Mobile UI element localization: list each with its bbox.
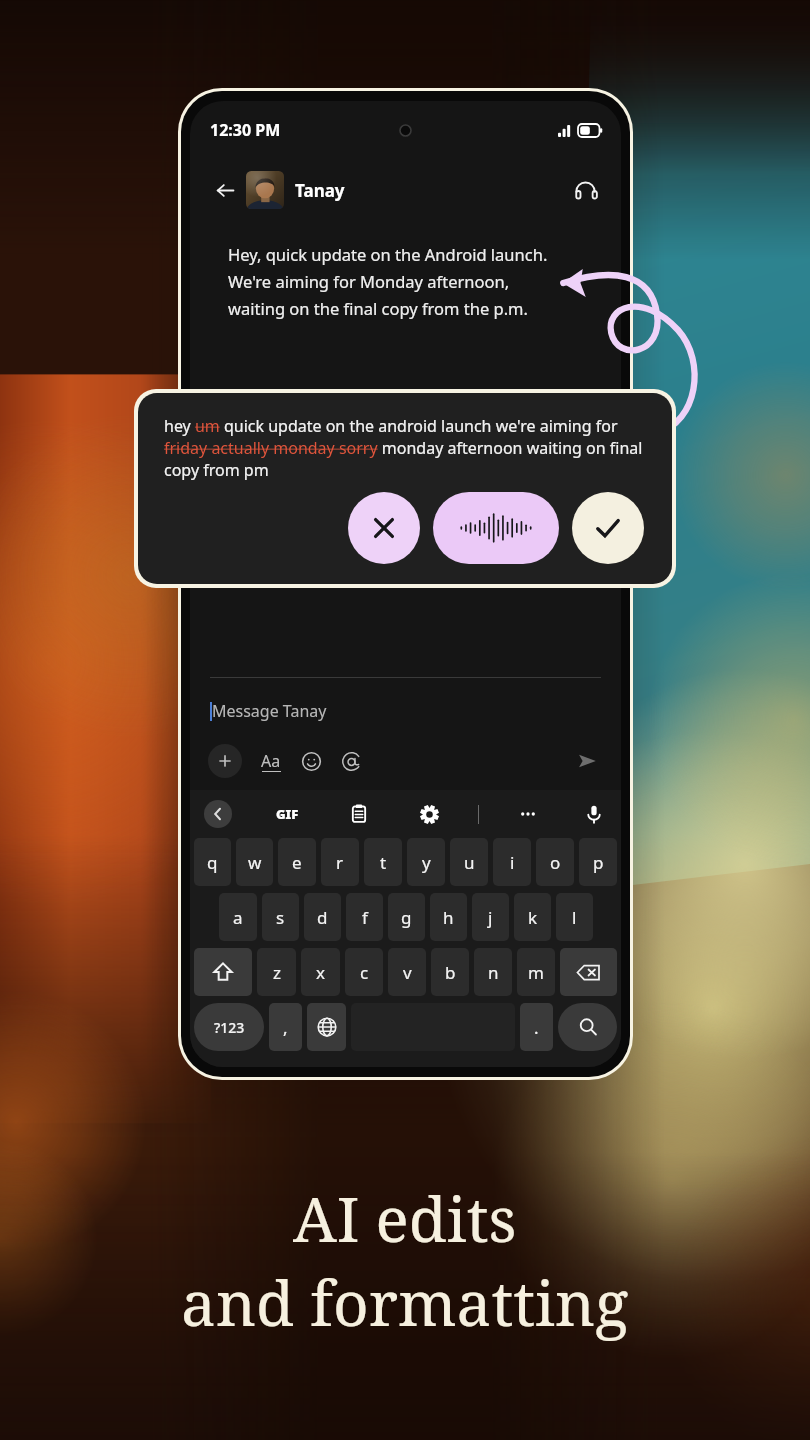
staticText: s — [276, 906, 285, 929]
staticText: r — [336, 851, 344, 874]
staticText: e — [292, 851, 302, 874]
button[interactable]: h — [430, 893, 467, 941]
staticText: Message Tanay — [212, 700, 327, 722]
button[interactable]: k — [514, 893, 551, 941]
button[interactable]: y — [407, 838, 445, 886]
button[interactable]: e — [278, 838, 316, 886]
button[interactable]: Voice input — [581, 801, 607, 827]
button[interactable]: v — [388, 948, 426, 996]
staticText: Aa — [261, 750, 281, 772]
button[interactable]: m — [517, 948, 555, 996]
staticText: u — [464, 851, 475, 874]
staticText: waiting on the final copy from the p.m. — [228, 297, 528, 319]
button[interactable]: Clipboard — [346, 801, 372, 827]
staticText: c — [360, 961, 369, 984]
button[interactable]: Send — [571, 745, 603, 777]
staticText: w — [248, 851, 262, 874]
staticText: 12:30 PM — [210, 119, 281, 141]
button[interactable]: Add attachment — [208, 744, 242, 778]
staticText: o — [550, 851, 561, 874]
button[interactable]: ?123 — [194, 1003, 264, 1051]
button[interactable]: c — [345, 948, 383, 996]
staticText: l — [572, 906, 577, 929]
button[interactable]: x — [301, 948, 340, 996]
button[interactable]: q — [194, 838, 231, 886]
staticText: . — [534, 1016, 539, 1039]
button[interactable]: Huddle — [567, 172, 603, 208]
button[interactable]: i — [493, 838, 531, 886]
button[interactable]: Expand toolbar — [204, 800, 232, 828]
button[interactable]: Tanay — [246, 171, 345, 209]
button[interactable]: p — [579, 838, 617, 886]
staticText: k — [528, 906, 538, 929]
staticText: and formatting — [181, 1260, 629, 1344]
button[interactable]: d — [304, 893, 341, 941]
button[interactable]: n — [474, 948, 512, 996]
staticText: GIF — [276, 805, 299, 823]
staticText: t — [380, 851, 387, 874]
button[interactable]: Search — [558, 1003, 617, 1051]
staticText: hey um quick update on the android launc… — [164, 415, 650, 481]
button[interactable]: Recording — [433, 492, 559, 564]
button[interactable]: GIF — [272, 799, 302, 829]
button[interactable]: l — [556, 893, 593, 941]
staticText: h — [443, 906, 454, 929]
button[interactable]: , — [269, 1003, 302, 1051]
button[interactable]: More options — [515, 801, 541, 827]
staticText: d — [317, 906, 328, 929]
staticText: n — [488, 961, 499, 984]
button[interactable]: f — [346, 893, 383, 941]
staticText: Tanay — [295, 179, 345, 202]
button[interactable]: t — [364, 838, 402, 886]
staticText: x — [316, 961, 325, 984]
button[interactable]: Change language — [307, 1003, 346, 1051]
button[interactable]: g — [388, 893, 425, 941]
button[interactable]: Mention — [336, 746, 366, 776]
button[interactable]: Formatting — [256, 746, 286, 776]
staticText: p — [593, 851, 604, 874]
button[interactable]: j — [472, 893, 509, 941]
staticText: g — [401, 906, 412, 929]
button[interactable]: r — [321, 838, 359, 886]
staticText: , — [283, 1016, 288, 1039]
button[interactable]: Shift — [194, 948, 252, 996]
staticText: m — [528, 961, 544, 984]
button[interactable]: s — [262, 893, 299, 941]
button[interactable]: b — [431, 948, 469, 996]
button[interactable]: Discard — [348, 492, 420, 564]
staticText: z — [273, 961, 281, 984]
staticText: q — [207, 851, 218, 874]
staticText: ?123 — [214, 1018, 245, 1037]
button[interactable]: a — [219, 893, 257, 941]
button[interactable]: Back — [208, 173, 242, 207]
staticText: f — [362, 906, 368, 929]
button[interactable]: Emoji — [296, 746, 326, 776]
button[interactable]: Accept — [572, 492, 644, 564]
staticText: Hey, quick update on the Android launch. — [228, 243, 548, 265]
button[interactable]: Settings — [416, 801, 442, 827]
button[interactable]: z — [257, 948, 296, 996]
staticText: b — [445, 961, 456, 984]
staticText: AI edits — [293, 1176, 517, 1260]
staticText: We're aiming for Monday afternoon, — [228, 270, 510, 292]
button[interactable]: o — [536, 838, 574, 886]
staticText: j — [488, 906, 493, 929]
staticText: a — [233, 906, 243, 929]
staticText: y — [422, 851, 431, 874]
button[interactable]: u — [450, 838, 488, 886]
button[interactable]: w — [236, 838, 273, 886]
button[interactable]: . — [520, 1003, 553, 1051]
button[interactable]: Backspace — [560, 948, 617, 996]
staticText: i — [510, 851, 515, 874]
staticText: v — [403, 961, 412, 984]
